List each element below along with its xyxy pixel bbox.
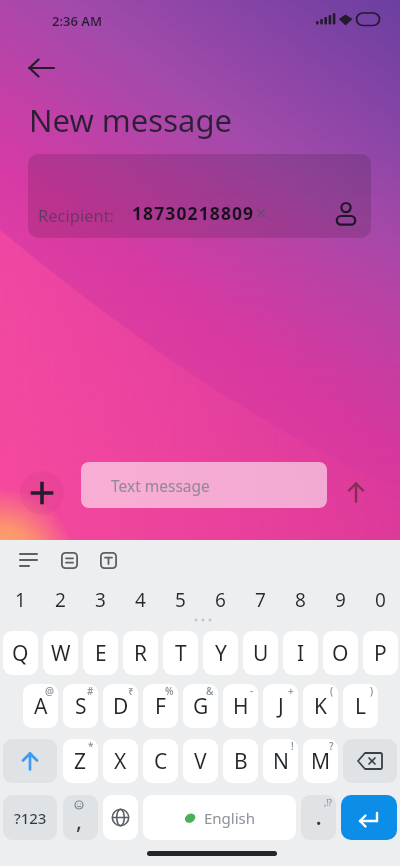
button[interactable]: K [303, 684, 338, 728]
button[interactable]: Text message [81, 462, 327, 508]
staticText: & [206, 684, 214, 698]
button[interactable] [93, 545, 123, 575]
staticText: B [234, 747, 248, 776]
button[interactable] [103, 795, 138, 840]
button[interactable]: X [103, 739, 138, 783]
staticText: 0 [375, 587, 386, 613]
button[interactable] [343, 739, 397, 783]
button[interactable]: Recipient: [28, 154, 371, 238]
staticText: ? [329, 739, 334, 753]
button[interactable]: 0 [360, 586, 400, 614]
staticText: T [175, 639, 187, 668]
button[interactable]: U [243, 631, 278, 675]
button[interactable]: F [143, 684, 178, 728]
button[interactable]: , [63, 795, 98, 840]
staticText: U [253, 639, 269, 668]
staticText: Y [215, 639, 227, 668]
staticText: + [288, 684, 294, 698]
button[interactable] [336, 472, 376, 512]
button[interactable]: B [223, 739, 258, 783]
staticText: J [278, 692, 284, 721]
staticText: K [314, 692, 327, 721]
button[interactable]: 9 [320, 586, 360, 614]
staticText: V [194, 747, 207, 776]
staticText: 2:36 AM [52, 12, 103, 30]
staticText: ₹ [128, 684, 134, 698]
button[interactable]: P [363, 631, 398, 675]
button[interactable]: A [23, 684, 58, 728]
staticText: M [311, 747, 331, 776]
button[interactable]: Z [63, 739, 98, 783]
button[interactable]: . [301, 795, 336, 840]
staticText: 6 [215, 587, 226, 613]
button[interactable]: L [343, 684, 378, 728]
button[interactable]: Q [3, 631, 38, 675]
staticText: 1 [15, 587, 26, 613]
staticText: 2 [55, 587, 66, 613]
staticText: English [204, 808, 256, 828]
staticText: F [155, 692, 166, 721]
staticText: 4 [135, 587, 146, 613]
button[interactable]: 4 [120, 586, 160, 614]
staticText: , [76, 805, 83, 835]
staticText: ,!? [324, 797, 332, 808]
button[interactable]: V [183, 739, 218, 783]
staticText: * [88, 739, 94, 753]
button[interactable]: M [303, 739, 338, 783]
staticText: O [332, 639, 349, 668]
button[interactable]: T [163, 631, 198, 675]
staticText: 3 [95, 587, 106, 613]
button[interactable]: H [223, 684, 258, 728]
button[interactable]: W [43, 631, 78, 675]
staticText: . [316, 805, 322, 831]
staticText: W [51, 639, 71, 668]
button[interactable]: English [143, 795, 296, 840]
staticText: ! [291, 739, 294, 753]
button[interactable] [3, 739, 57, 783]
button[interactable]: S [63, 684, 98, 728]
staticText: N [273, 747, 289, 776]
button[interactable]: J [263, 684, 298, 728]
button[interactable]: 2 [40, 586, 80, 614]
staticText: P [374, 639, 387, 668]
staticText: @ [45, 684, 54, 698]
button[interactable]: 3 [80, 586, 120, 614]
staticText: ) [370, 684, 374, 698]
staticText: X [114, 747, 127, 776]
button[interactable] [54, 545, 84, 575]
button[interactable]: C [143, 739, 178, 783]
staticText: New message [29, 99, 232, 141]
button[interactable]: G [183, 684, 218, 728]
staticText: - [250, 684, 254, 698]
button[interactable]: Y [203, 631, 238, 675]
button[interactable]: R [123, 631, 158, 675]
button[interactable] [20, 471, 64, 515]
staticText: I [297, 639, 305, 668]
button[interactable] [20, 46, 64, 90]
staticText: R [134, 639, 148, 668]
staticText: Recipient: [38, 204, 115, 226]
staticText: Text message [111, 475, 210, 496]
staticText: G [193, 692, 209, 721]
button[interactable]: 8 [280, 586, 320, 614]
button[interactable]: D [103, 684, 138, 728]
staticText: ( [330, 684, 334, 698]
button[interactable]: E [83, 631, 118, 675]
button[interactable]: 1 [0, 586, 40, 614]
button[interactable] [14, 545, 44, 575]
staticText: 18730218809 [132, 201, 255, 225]
button[interactable] [328, 196, 364, 232]
button[interactable]: ?123 [3, 795, 57, 840]
staticText: S [75, 692, 87, 721]
staticText: % [165, 684, 174, 698]
button[interactable]: O [323, 631, 358, 675]
button[interactable]: 7 [240, 586, 280, 614]
button[interactable]: 6 [200, 586, 240, 614]
button[interactable]: I [283, 631, 318, 675]
button[interactable] [341, 795, 397, 840]
staticText: 8 [295, 587, 306, 613]
staticText: # [87, 684, 94, 698]
staticText: 5 [175, 587, 186, 613]
button[interactable]: N [263, 739, 298, 783]
button[interactable]: 5 [160, 586, 200, 614]
